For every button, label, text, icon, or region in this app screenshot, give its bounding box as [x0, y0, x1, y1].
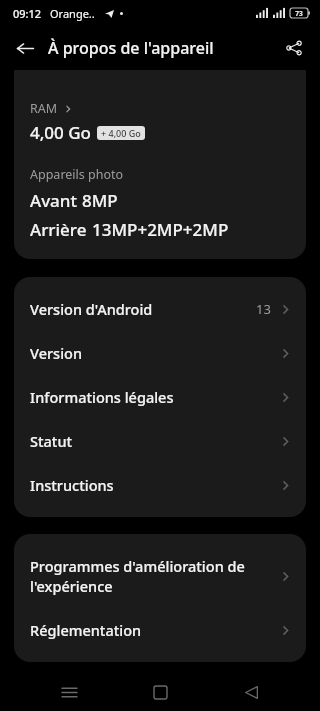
button[interactable]: Version	[14, 331, 306, 375]
staticText: Version d'Android	[30, 299, 256, 319]
button[interactable]: Applications récentes	[47, 673, 91, 711]
staticText: 8MP	[82, 189, 118, 212]
staticText: Instructions	[30, 475, 279, 495]
button[interactable]: Réglementation	[14, 608, 306, 652]
button[interactable]: 5000 mAh (TYP) / 4,92 po	[14, 70, 306, 259]
staticText: Informations légales	[30, 387, 279, 407]
staticText: 4,00 Go	[30, 121, 91, 144]
staticText: Programmes d'amélioration de l'expérienc…	[30, 556, 279, 596]
staticText: Avant	[30, 189, 77, 212]
staticText: 73	[295, 9, 303, 18]
staticText: Version	[30, 343, 279, 363]
button[interactable]: Retour	[8, 31, 42, 65]
button[interactable]: Version d'Android	[14, 287, 306, 331]
staticText: Arrière	[30, 218, 87, 241]
button[interactable]: Accueil	[138, 673, 182, 711]
button[interactable]: Instructions	[14, 463, 306, 507]
staticText: RAM	[30, 100, 58, 117]
staticText: Orange..	[50, 6, 95, 21]
staticText: + 4,00 Go	[101, 127, 141, 139]
button[interactable]: Programmes d'amélioration de l'expérienc…	[14, 544, 306, 608]
staticText: 09:12	[13, 6, 42, 21]
button[interactable]: Partager	[278, 32, 310, 64]
button[interactable]: Statut	[14, 419, 306, 463]
button[interactable]: Retour	[229, 673, 273, 711]
staticText: 13MP+2MP+2MP	[92, 218, 229, 241]
staticText: Réglementation	[30, 620, 279, 640]
button[interactable]: Informations légales	[14, 375, 306, 419]
staticText: Appareils photo	[30, 166, 124, 183]
staticText: À propos de l'appareil	[48, 37, 214, 59]
staticText: 13	[256, 300, 271, 318]
staticText: Statut	[30, 431, 279, 451]
